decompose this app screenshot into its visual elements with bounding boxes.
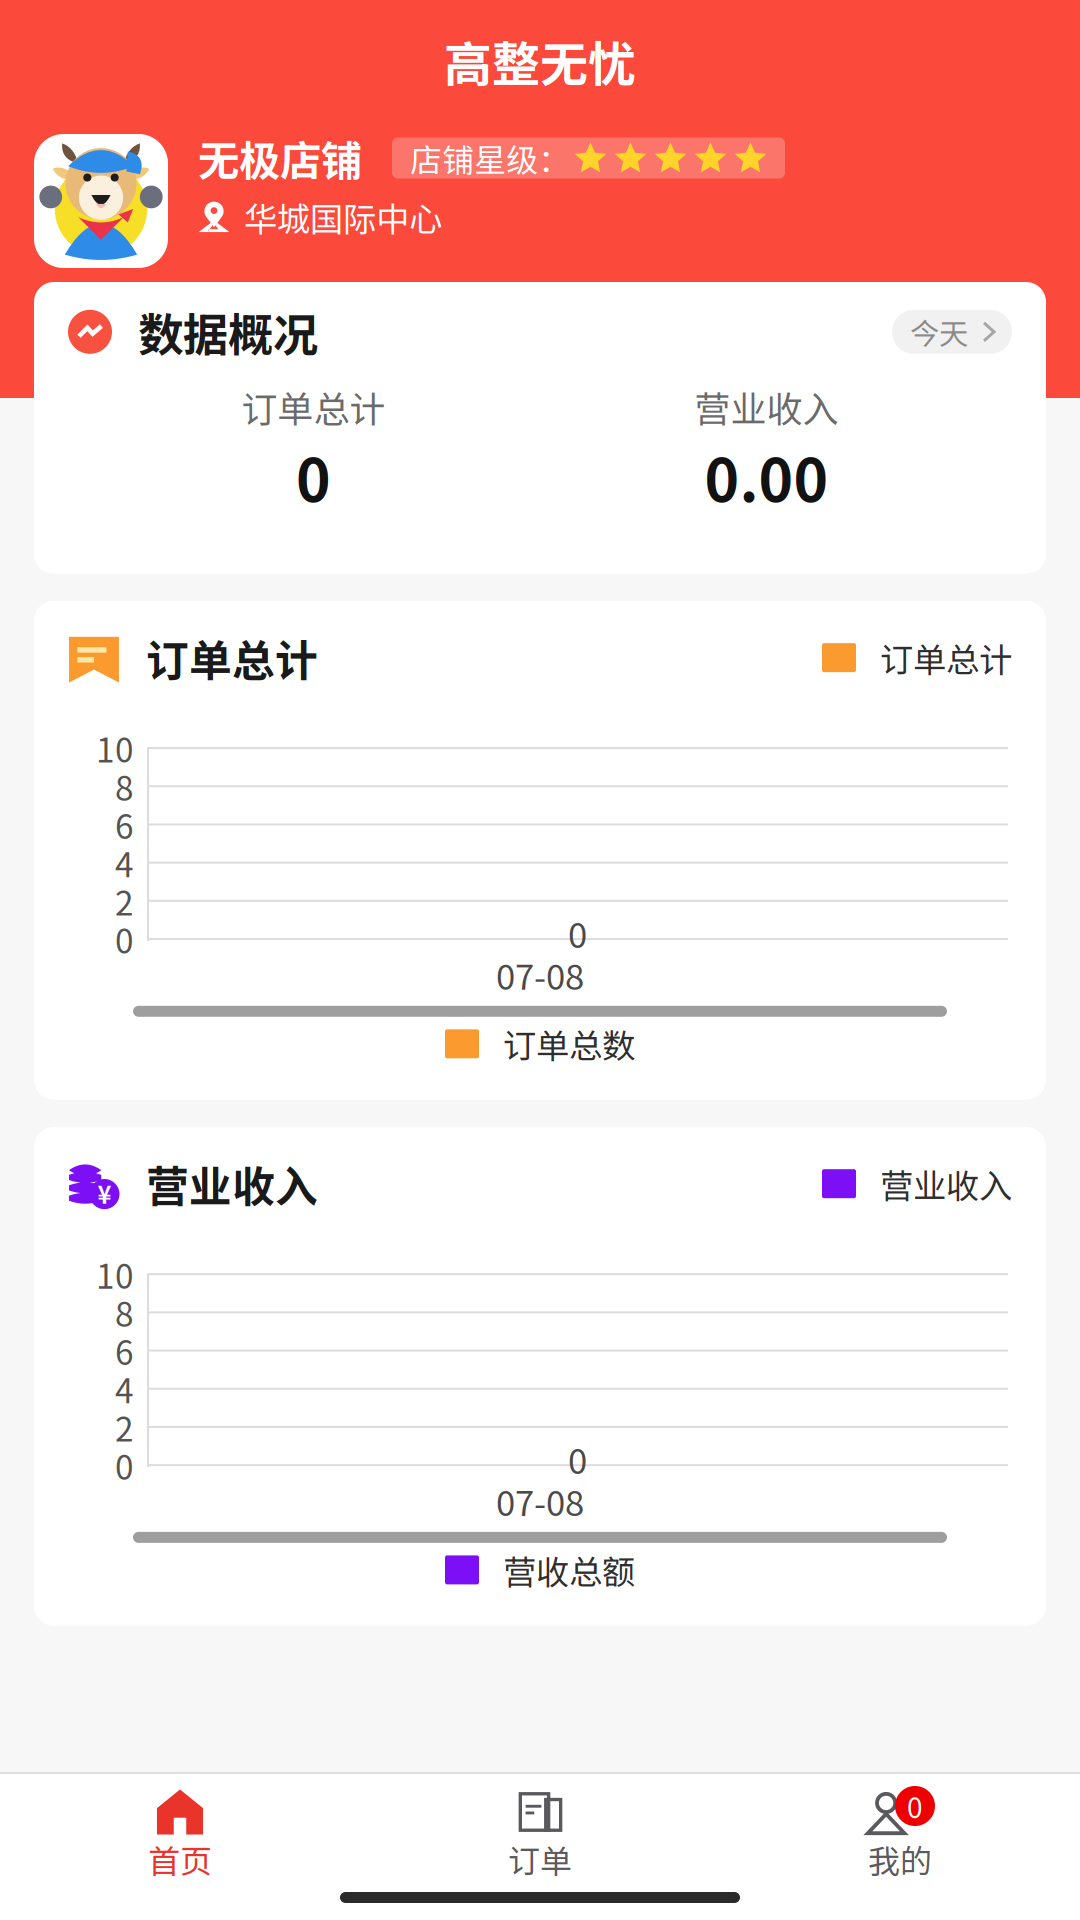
staticText: 华城国际中心 <box>244 193 442 241</box>
staticText: 首页 <box>148 1836 212 1882</box>
staticText: 2 <box>115 877 134 925</box>
staticText: 0 <box>296 434 331 519</box>
staticText: 0 <box>115 915 134 963</box>
staticText: 我的 <box>868 1836 932 1882</box>
staticText: 0 <box>568 908 587 958</box>
staticText: 订单总计 <box>880 633 1012 682</box>
staticText: 8 <box>115 762 134 810</box>
staticText: 10 <box>96 1250 134 1298</box>
staticText: 0.00 <box>704 434 828 519</box>
staticText: 无极店铺 <box>198 128 362 188</box>
button[interactable]: 0 <box>720 1788 1080 1874</box>
staticText: 07-08 <box>496 1476 584 1526</box>
staticText: 店铺星级： <box>410 135 570 181</box>
staticText: ¥ <box>97 1176 111 1211</box>
staticText: 0 <box>568 1434 587 1484</box>
staticText: 0 <box>115 1441 134 1489</box>
staticText: 0 <box>907 1786 923 1826</box>
staticText: 订单总计 <box>146 627 318 688</box>
staticText: 营业收入 <box>880 1160 1012 1208</box>
staticText: 订单总数 <box>503 1020 635 1068</box>
staticText: 营业收入 <box>146 1153 318 1215</box>
staticText: 8 <box>115 1288 134 1336</box>
staticText: 4 <box>115 1365 134 1413</box>
button[interactable]: 今天 <box>892 310 1012 354</box>
button[interactable]: 订单 <box>360 1788 720 1874</box>
staticText: 营业收入 <box>694 381 838 433</box>
staticText: 今天 <box>910 311 968 353</box>
staticText: 6 <box>115 1326 134 1375</box>
staticText: 07-08 <box>496 950 584 1000</box>
staticText: 4 <box>115 838 134 887</box>
staticText: 订单 <box>508 1836 572 1882</box>
staticText: 2 <box>115 1403 134 1451</box>
staticText: 数据概况 <box>138 299 318 365</box>
staticText: 高整无忧 <box>444 26 636 96</box>
staticText: 订单总计 <box>241 381 385 433</box>
staticText: 10 <box>96 724 134 772</box>
staticText: 6 <box>115 800 134 849</box>
staticText: 营收总额 <box>503 1546 635 1594</box>
button[interactable]: 首页 <box>0 1788 360 1874</box>
